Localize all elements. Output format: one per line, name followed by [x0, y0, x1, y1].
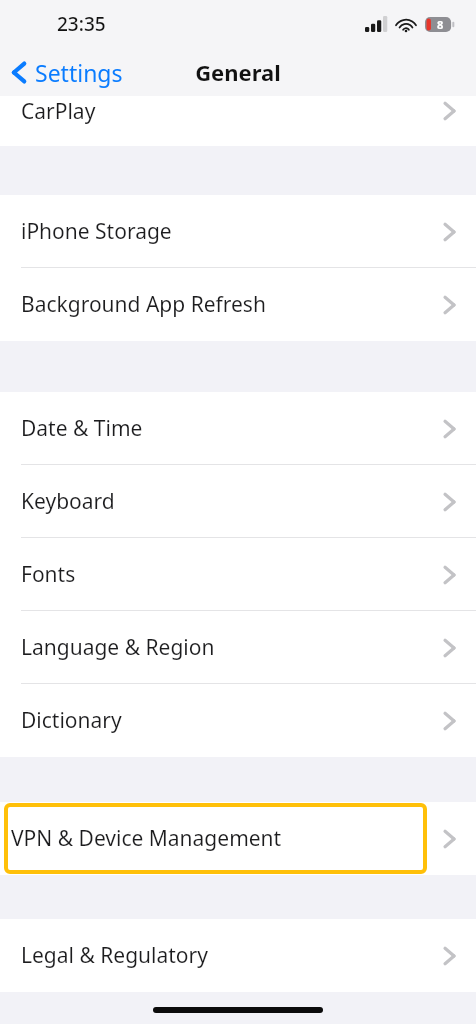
- staticText: General: [195, 57, 281, 87]
- button[interactable]: Legal & Regulatory: [0, 919, 476, 992]
- staticText: Background App Refresh: [21, 290, 440, 319]
- staticText: Language & Region: [21, 633, 440, 662]
- staticText: Dictionary: [21, 706, 440, 735]
- button[interactable]: VPN & Device Management: [0, 802, 476, 875]
- button[interactable]: Background App Refresh: [0, 268, 476, 341]
- button[interactable]: CarPlay: [0, 96, 476, 146]
- button[interactable]: Dictionary: [0, 684, 476, 757]
- staticText: 23:35: [57, 11, 106, 37]
- staticText: Settings: [35, 57, 123, 88]
- button[interactable]: Keyboard: [0, 465, 476, 538]
- staticText: Legal & Regulatory: [21, 941, 440, 970]
- staticText: Date & Time: [21, 414, 440, 443]
- staticText: CarPlay: [21, 97, 440, 126]
- staticText: 8: [437, 17, 444, 32]
- button[interactable]: Date & Time: [0, 392, 476, 465]
- staticText: iPhone Storage: [21, 217, 440, 246]
- button[interactable]: Language & Region: [0, 611, 476, 684]
- button[interactable]: iPhone Storage: [0, 195, 476, 268]
- button[interactable]: Settings: [0, 57, 131, 88]
- staticText: Fonts: [21, 560, 440, 589]
- button[interactable]: Fonts: [0, 538, 476, 611]
- staticText: VPN & Device Management: [11, 824, 440, 853]
- staticText: Keyboard: [21, 487, 440, 516]
